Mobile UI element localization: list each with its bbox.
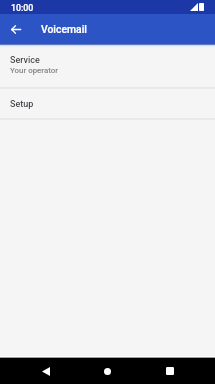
button[interactable]: Back — [32, 358, 59, 384]
button[interactable]: Service — [0, 48, 215, 87]
button[interactable]: Home — [94, 358, 121, 384]
button[interactable]: Navigate up — [1, 14, 31, 44]
staticText: 10:00 — [11, 3, 34, 13]
staticText: Your operator — [10, 66, 59, 75]
staticText: Setup — [10, 99, 34, 110]
button[interactable]: Setup — [0, 89, 215, 118]
staticText: Service — [10, 55, 40, 66]
button[interactable]: Recent apps — [156, 358, 183, 384]
staticText: Voicemail — [41, 23, 87, 35]
